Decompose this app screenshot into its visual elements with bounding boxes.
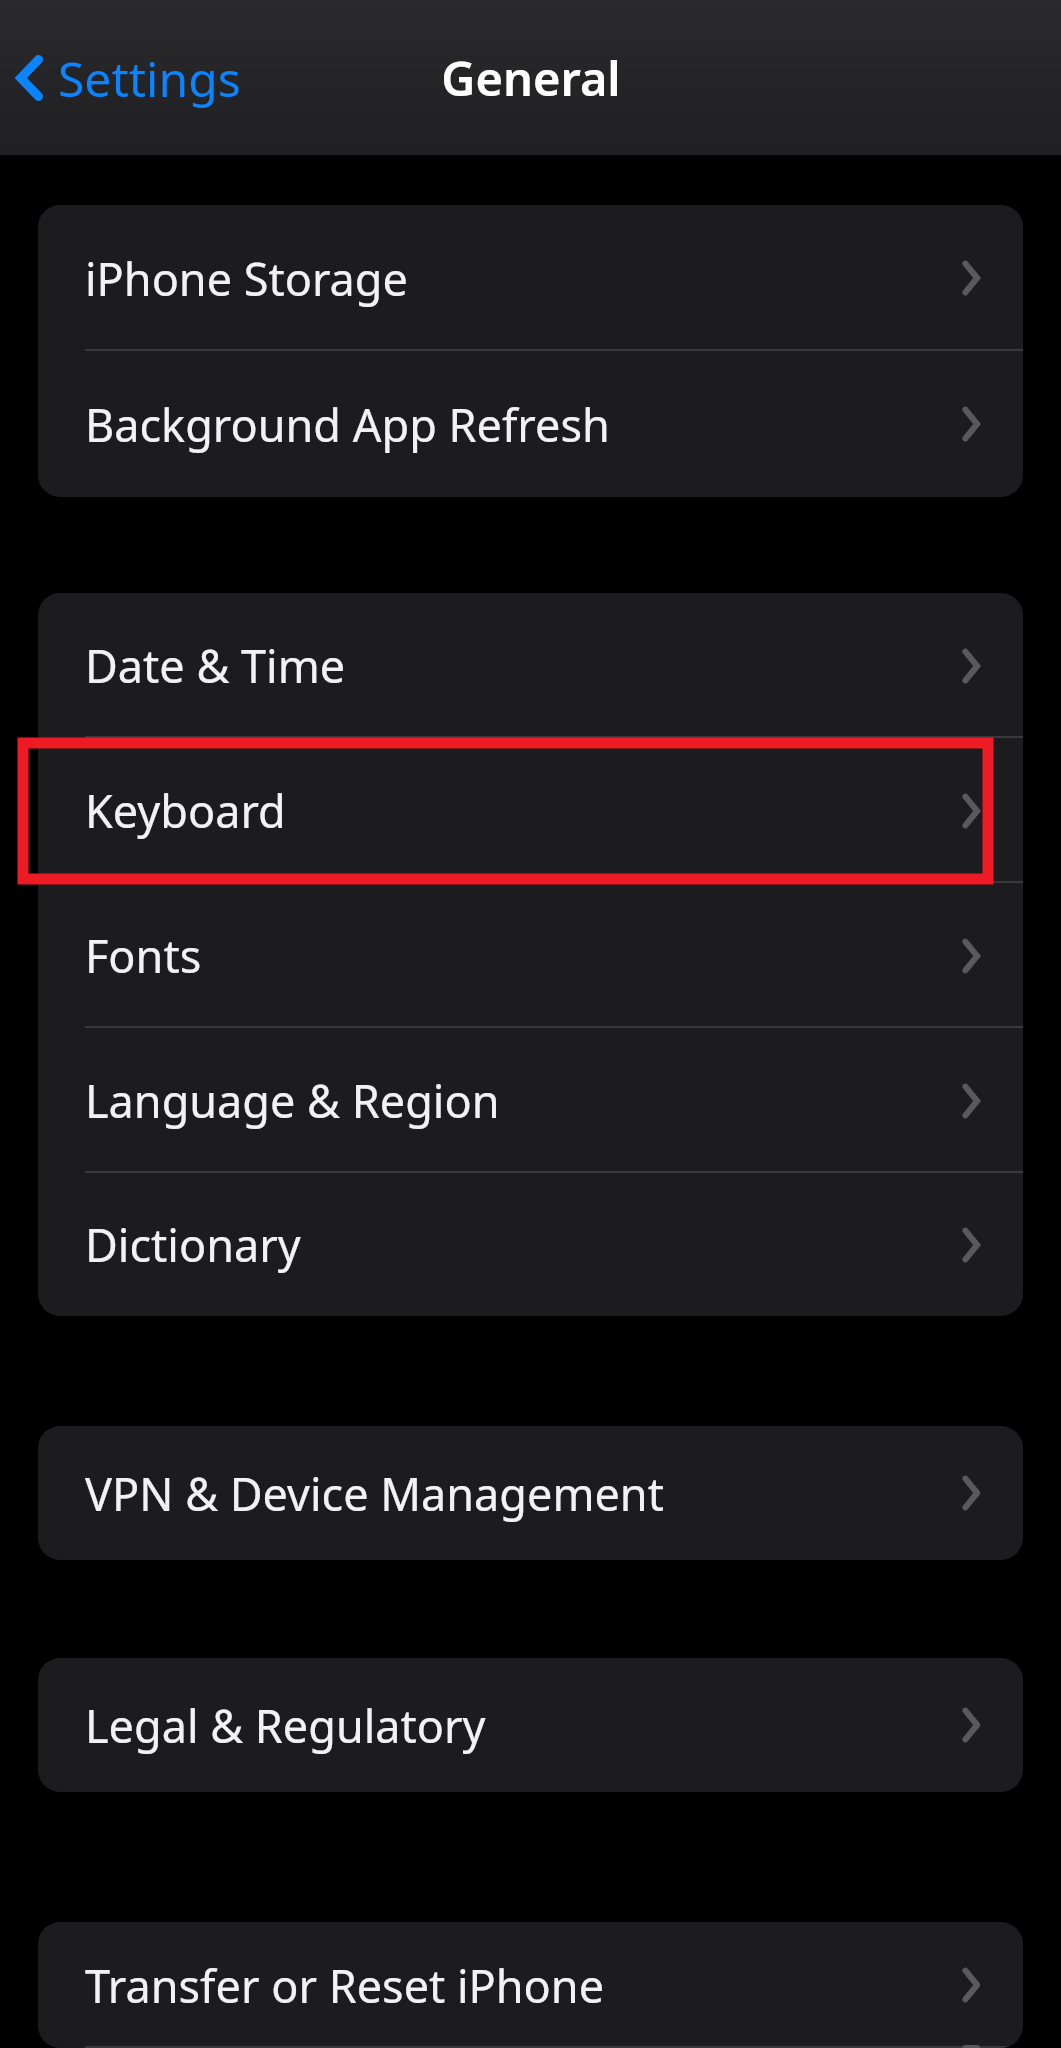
button[interactable]: Dictionary — [38, 1173, 1023, 1316]
staticText: iPhone Storage — [85, 248, 408, 309]
staticText: Settings — [58, 46, 241, 111]
staticText: Transfer or Reset iPhone — [85, 1955, 605, 2016]
button[interactable]: VPN & Device Management — [38, 1426, 1023, 1560]
button[interactable]: Background App Refresh — [38, 351, 1023, 497]
staticText: Legal & Regulatory — [85, 1695, 486, 1756]
staticText: Date & Time — [85, 635, 346, 696]
button[interactable]: iPhone Storage — [38, 205, 1023, 351]
staticText: General — [441, 46, 621, 110]
button[interactable]: Keyboard — [38, 738, 1023, 883]
button[interactable]: Language & Region — [38, 1028, 1023, 1173]
staticText: VPN & Device Management — [85, 1463, 664, 1524]
button[interactable]: Legal & Regulatory — [38, 1658, 1023, 1792]
staticText: Dictionary — [85, 1214, 301, 1275]
button[interactable]: Settings — [14, 30, 241, 126]
staticText: Fonts — [85, 925, 202, 986]
staticText: Language & Region — [85, 1070, 500, 1131]
staticText: Keyboard — [85, 780, 286, 841]
button[interactable]: Date & Time — [38, 593, 1023, 738]
staticText: Background App Refresh — [85, 394, 610, 455]
button[interactable]: Fonts — [38, 883, 1023, 1028]
button[interactable]: Transfer or Reset iPhone — [38, 1922, 1023, 2048]
